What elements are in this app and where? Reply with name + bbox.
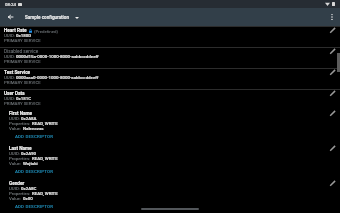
- button[interactable]: Edit: [325, 86, 340, 101]
- staticText: Test Service: [4, 70, 31, 76]
- button[interactable]: Back: [0, 8, 20, 26]
- staticText: 0x00: [23, 196, 33, 201]
- staticText: UUID:: [4, 54, 16, 59]
- button[interactable]: ADD DESCRIPTOR: [15, 131, 54, 142]
- staticText: Wojtaki: [23, 161, 38, 166]
- staticText: Disabled service: [4, 49, 39, 55]
- button[interactable]: Gender: [0, 180, 340, 213]
- staticText: 0x2A90: [21, 151, 37, 156]
- staticText: Nalenczas: [23, 126, 44, 131]
- button[interactable]: First Name: [0, 110, 340, 145]
- staticText: UUID:: [9, 116, 21, 121]
- button[interactable]: Last Name: [0, 145, 340, 180]
- staticText: 0x2A8C: [21, 186, 37, 191]
- staticText: PRIMARY SERVICE: [4, 80, 41, 85]
- staticText: (Predefined): [34, 29, 59, 34]
- button[interactable]: Heart Rate: [0, 27, 340, 47]
- staticText: UUID:: [9, 186, 21, 191]
- staticText: Properties:: [9, 191, 32, 196]
- staticText: PRIMARY SERVICE: [4, 38, 41, 43]
- staticText: User Data: [4, 91, 25, 97]
- staticText: PRIMARY SERVICE: [4, 101, 41, 106]
- staticText: 0x180D: [16, 33, 32, 38]
- staticText: Sample configuration: [25, 15, 69, 20]
- button[interactable]: Test Service: [0, 69, 340, 89]
- button[interactable]: Edit: [325, 23, 340, 38]
- staticText: ADD DESCRIPTOR: [15, 134, 54, 139]
- staticText: First Name: [9, 111, 33, 117]
- staticText: READ, WRITE: [32, 121, 58, 126]
- staticText: UUID:: [4, 96, 16, 101]
- staticText: Gender: [9, 181, 25, 187]
- staticText: READ, WRITE: [32, 156, 58, 161]
- staticText: Heart Rate: [4, 28, 27, 34]
- button[interactable]: ADD DESCRIPTOR: [15, 201, 54, 212]
- staticText: 0x2A8A: [21, 116, 37, 121]
- staticText: Value:: [9, 196, 23, 201]
- staticText: PRIMARY SERVICE: [4, 59, 41, 64]
- button[interactable]: Edit: [325, 141, 340, 156]
- staticText: Value:: [9, 126, 23, 131]
- staticText: UUID:: [4, 75, 16, 80]
- staticText: UUID:: [9, 151, 21, 156]
- staticText: Properties:: [9, 121, 32, 126]
- staticText: 0x181C: [16, 96, 32, 101]
- staticText: Properties:: [9, 156, 32, 161]
- button[interactable]: More options: [324, 8, 340, 26]
- button[interactable]: Disabled service: [0, 48, 340, 68]
- button[interactable]: Edit: [325, 44, 340, 59]
- staticText: UUID:: [4, 33, 16, 38]
- button[interactable]: Edit: [325, 106, 340, 121]
- button[interactable]: ADD DESCRIPTOR: [15, 166, 54, 177]
- staticText: 0000d15a-0000-1000-8000-aabbccddeeff: [16, 54, 99, 59]
- staticText: ADD DESCRIPTOR: [15, 169, 54, 174]
- button[interactable]: Edit: [325, 176, 340, 191]
- button[interactable]: User Data: [0, 90, 340, 110]
- button[interactable]: Sample configuration: [20, 11, 84, 24]
- button[interactable]: Edit: [325, 65, 340, 80]
- staticText: 08:24: [5, 2, 16, 7]
- staticText: 0000aaa0-0000-1000-8000-aabbccddeeff: [16, 75, 99, 80]
- staticText: Value:: [9, 161, 23, 166]
- staticText: READ, WRITE: [32, 191, 58, 196]
- staticText: Last Name: [9, 146, 32, 152]
- staticText: ADD DESCRIPTOR: [15, 204, 54, 209]
